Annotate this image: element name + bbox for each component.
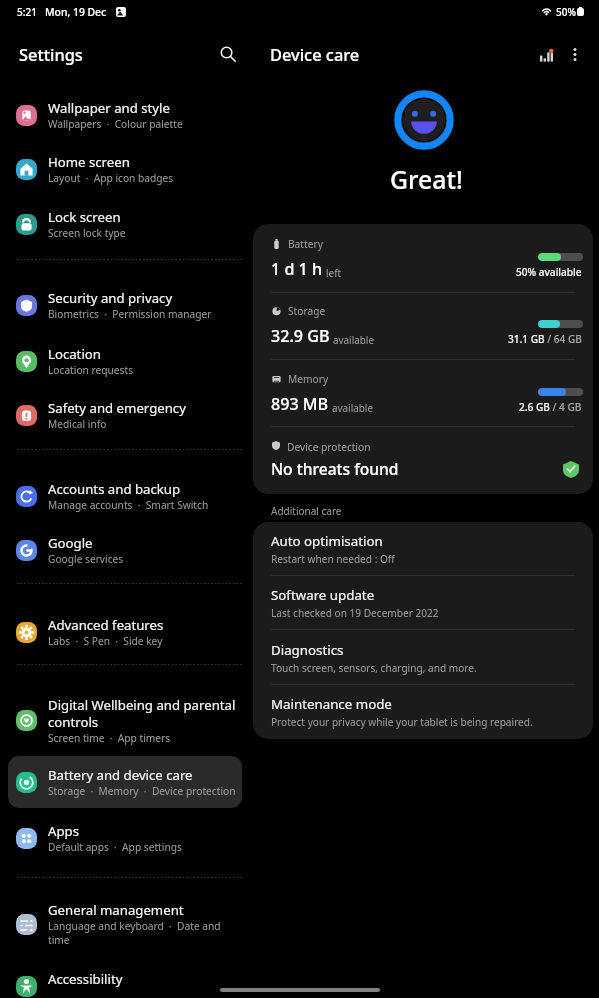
staticText: available [333,333,374,346]
staticText: Layout · App icon badges [48,171,174,185]
staticText: Restart when needed : Off [271,552,395,566]
button[interactable]: Google [8,524,242,576]
button[interactable]: Lock screen [8,198,242,250]
button[interactable]: Device protection [253,426,593,494]
staticText: Mon, 19 Dec [45,5,107,19]
button[interactable]: Security and privacy [8,279,242,331]
staticText: Storage · Memory · Device protection [48,784,236,798]
staticText: 5:21 [17,5,37,19]
staticText: Location [48,345,101,363]
staticText: Digital Wellbeing and parental controls [48,696,236,731]
button[interactable]: Digital Wellbeing and parental controls [8,689,242,751]
button[interactable]: Software update [253,576,593,631]
staticText: Maintenance mode [271,695,392,713]
staticText: Great! [390,162,463,196]
staticText: Diagnostics [271,641,344,659]
staticText: Default apps · App settings [48,840,182,854]
button[interactable]: Location [8,335,242,387]
staticText: left [326,266,342,279]
staticText: Security and privacy [48,289,173,307]
staticText: Last checked on 19 December 2022 [271,606,439,620]
staticText: Touch screen, sensors, charging, and mor… [271,661,477,675]
staticText: Language and keyboard · Date and time [48,919,221,947]
staticText: Lock screen [48,208,121,226]
staticText: Battery and device care [48,766,193,784]
staticText: 50% available [516,265,582,279]
staticText: Apps [48,822,79,840]
button[interactable]: Diagnostics [253,631,593,686]
staticText: Accessibility [48,970,123,988]
button[interactable]: Accounts and backup [8,470,242,522]
button[interactable]: Apps [8,812,242,864]
button[interactable]: Accessibility [8,960,242,998]
staticText: Memory [288,372,329,386]
button[interactable]: Auto optimisation [253,522,593,577]
staticText: Advanced features [48,616,164,634]
staticText: 31.1 GB / 64 GB [508,332,582,346]
staticText: No threats found [271,458,399,479]
button[interactable]: Advanced features [8,606,242,658]
staticText: General management [48,901,184,919]
staticText: Safety and emergency [48,399,186,417]
staticText: Auto optimisation [271,532,383,550]
staticText: 1 d 1 h [271,258,323,280]
staticText: Location requests [48,363,134,377]
staticText: Additional care [271,504,342,518]
staticText: Storage [288,304,326,318]
staticText: Protect your privacy while your tablet i… [271,715,533,729]
button[interactable]: Battery [253,224,593,290]
staticText: Software update [271,586,375,604]
button[interactable]: Search [213,39,243,69]
staticText: Device care [270,43,360,65]
staticText: Medical info [48,417,107,431]
button[interactable]: Maintenance mode [253,685,593,739]
staticText: 32.9 GB [271,325,330,347]
staticText: Settings [19,43,83,65]
staticText: Accounts and backup [48,480,181,498]
button[interactable]: Storage [253,291,593,357]
staticText: available [332,401,373,414]
staticText: Home screen [48,153,130,171]
staticText: Wallpapers · Colour palette [48,117,183,131]
staticText: Labs · S Pen · Side key [48,634,163,648]
button[interactable]: More options [561,40,589,68]
button[interactable]: Home screen [8,143,242,195]
staticText: Wallpaper and style [48,99,170,117]
button[interactable]: Wallpaper and style [8,89,242,141]
staticText: Screen time · App timers [48,731,171,745]
staticText: Biometrics · Permission manager [48,307,212,321]
staticText: Battery [288,237,323,251]
button[interactable]: Memory [253,359,593,425]
staticText: Screen lock type [48,226,126,240]
button[interactable]: General management [8,893,242,955]
staticText: 50% [556,5,576,19]
button[interactable]: Safety and emergency [8,389,242,441]
staticText: 2.6 GB / 4 GB [519,400,582,414]
staticText: Google [48,534,93,552]
staticText: Device protection [287,440,371,454]
button[interactable]: Battery and device care [8,756,242,808]
button[interactable]: Usage stats [533,43,559,71]
staticText: Manage accounts · Smart Switch [48,498,209,512]
staticText: Google services [48,552,124,566]
staticText: 893 MB [271,393,329,415]
